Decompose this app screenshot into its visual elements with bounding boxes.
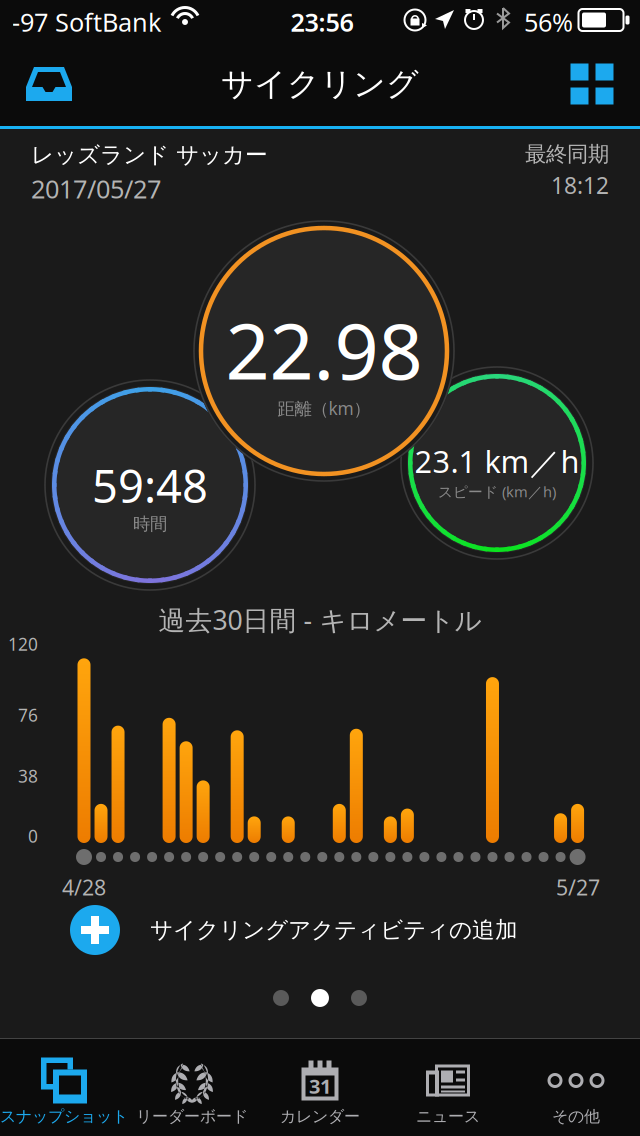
button[interactable]: リーダーボード [128, 1039, 256, 1136]
staticText: 38 [18, 764, 38, 787]
button[interactable]: Inbox [12, 47, 86, 121]
staticText: サイクリングアクティビティの追加 [150, 916, 518, 944]
button[interactable]: Dashboard [556, 47, 628, 121]
staticText: 76 [18, 703, 38, 726]
staticText: 5/27 [556, 873, 600, 901]
staticText: カレンダー [280, 1107, 360, 1126]
staticText: その他 [552, 1107, 600, 1126]
staticText: 120 [8, 632, 38, 655]
staticText: レッズランド サッカー [31, 141, 268, 169]
staticText: 59:48 [92, 455, 208, 515]
staticText: リーダーボード [136, 1107, 248, 1126]
staticText: サイクリング [221, 64, 419, 104]
button[interactable]: ニュース [384, 1039, 512, 1136]
staticText: 18:12 [551, 170, 609, 200]
staticText: 2017/05/27 [31, 172, 161, 205]
staticText: 56% [524, 5, 573, 39]
button[interactable]: スナップショット [0, 1039, 128, 1136]
staticText: 23:56 [290, 5, 353, 39]
staticText: 4/28 [62, 873, 106, 901]
button[interactable]: 31 [256, 1039, 384, 1136]
button[interactable]: サイクリングアクティビティの追加 [0, 898, 640, 962]
staticText: 時間 [133, 513, 167, 535]
staticText: スナップショット [0, 1107, 128, 1126]
staticText: ニュース [416, 1107, 480, 1126]
staticText: 距離（km） [277, 397, 370, 420]
staticText: 0 [28, 824, 38, 847]
staticText: 過去30日間 - キロメートル [158, 602, 481, 637]
staticText: スピード (km／h) [438, 482, 556, 501]
staticText: 22.98 [225, 298, 422, 401]
staticText: 最終同期 [525, 141, 609, 167]
staticText: 23.1 km／h [414, 441, 579, 482]
staticText: -97 SoftBank [12, 5, 162, 39]
staticText: 31 [309, 1073, 331, 1099]
button[interactable]: その他 [512, 1039, 640, 1136]
